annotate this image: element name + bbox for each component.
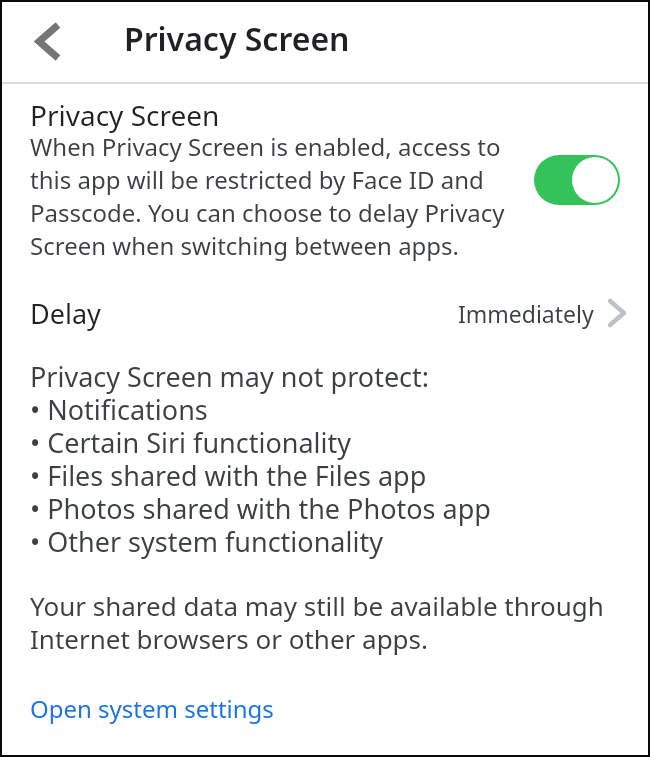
staticText: Delay	[30, 295, 101, 332]
button[interactable]: Open system settings	[30, 692, 274, 725]
staticText: Your shared data may still be available …	[30, 588, 604, 657]
staticText: Privacy Screen may not protect: • Notifi…	[30, 358, 491, 560]
staticText: Privacy Screen	[30, 96, 220, 134]
button[interactable]	[534, 155, 620, 205]
button[interactable]: Delay	[0, 282, 650, 344]
staticText: Immediately	[458, 298, 594, 329]
staticText: Privacy Screen	[124, 17, 350, 61]
button[interactable]	[22, 15, 74, 67]
staticText: When Privacy Screen is enabled, access t…	[30, 130, 505, 262]
